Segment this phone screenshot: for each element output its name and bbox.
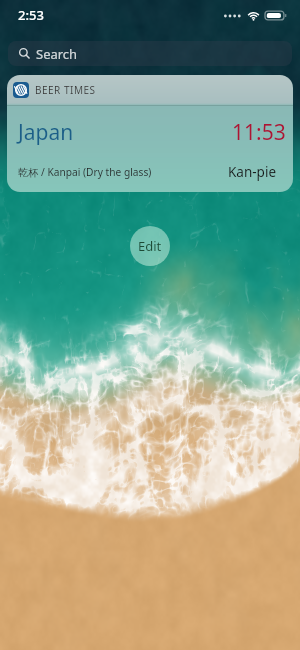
staticText: Edit	[138, 237, 162, 255]
staticText: 2:53	[18, 6, 44, 24]
staticText: Japan	[18, 118, 74, 147]
button[interactable]: Edit	[130, 226, 170, 266]
button[interactable]: BEER TIMES	[7, 75, 293, 192]
staticText: Search	[36, 45, 78, 63]
button[interactable]: Search	[8, 41, 292, 66]
staticText: 乾杯 / Kanpai (Dry the glass)	[18, 165, 152, 179]
staticText: BEER TIMES	[35, 83, 96, 97]
staticText: 11:53	[232, 118, 286, 147]
staticText: Kan-pie	[228, 163, 277, 181]
